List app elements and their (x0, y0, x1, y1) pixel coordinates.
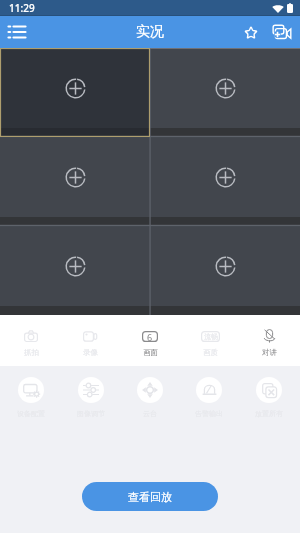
button[interactable]: Add channel (150, 137, 300, 226)
staticText: 查看回放 (128, 490, 172, 504)
button[interactable]: Add camera (266, 16, 296, 48)
button[interactable]: 云台 (122, 377, 178, 418)
button[interactable]: 6 (121, 315, 179, 366)
staticText: 设备配置 (17, 409, 45, 418)
staticText: 图像调节 (77, 409, 105, 418)
staticText: 录像 (83, 348, 98, 357)
button[interactable]: 查看回放 (82, 482, 218, 511)
staticText: 6 (147, 331, 153, 342)
button[interactable]: Add channel (0, 226, 150, 315)
button[interactable]: Menu (0, 16, 34, 48)
button[interactable]: Add channel (150, 48, 300, 137)
button[interactable]: 录像 (61, 315, 119, 366)
button[interactable]: 流畅 (181, 315, 239, 366)
button[interactable]: 放置所有 (241, 377, 297, 418)
button[interactable]: 对讲 (240, 315, 298, 366)
button[interactable]: 设备配置 (3, 377, 59, 418)
button[interactable]: Favorite (236, 16, 266, 48)
button[interactable]: Add channel (0, 48, 150, 137)
staticText: 11:29 (9, 1, 35, 15)
button[interactable]: 抓拍 (2, 315, 60, 366)
staticText: 对讲 (262, 348, 277, 357)
staticText: 流畅 (204, 332, 218, 341)
staticText: 画质 (203, 348, 218, 357)
staticText: 画面 (143, 348, 158, 357)
staticText: 实况 (136, 23, 164, 41)
button[interactable]: 图像调节 (63, 377, 119, 418)
staticText: 抓拍 (24, 348, 39, 357)
button[interactable]: Add channel (150, 226, 300, 315)
button[interactable]: 告警输出 (181, 377, 237, 418)
button[interactable]: Add channel (0, 137, 150, 226)
